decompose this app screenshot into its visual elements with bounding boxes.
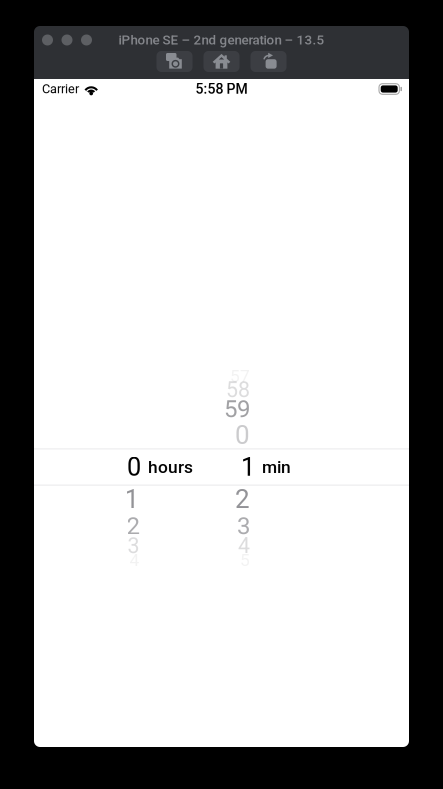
staticText: 57: [230, 366, 250, 386]
staticText: 0: [127, 452, 141, 482]
button[interactable]: Rotate: [250, 51, 286, 72]
staticText: 2: [235, 484, 250, 514]
staticText: 1: [241, 452, 255, 482]
staticText: hours: [148, 457, 193, 477]
staticText: 5: [240, 550, 250, 570]
staticText: 2: [126, 512, 139, 540]
button[interactable]: Home: [203, 51, 239, 72]
staticText: 4: [238, 533, 250, 558]
staticText: iPhone SE – 2nd generation – 13.5: [118, 32, 324, 48]
staticText: 58: [226, 377, 250, 402]
staticText: 59: [224, 395, 250, 423]
staticText: 3: [127, 533, 139, 558]
staticText: 3: [237, 512, 250, 540]
staticText: 5:58 PM: [195, 81, 247, 97]
staticText: Carrier: [42, 82, 79, 96]
button[interactable]: Screenshot: [156, 51, 192, 72]
staticText: min: [262, 457, 291, 477]
staticText: 0: [235, 420, 250, 450]
staticText: 1: [124, 484, 139, 514]
button[interactable]: 0: [34, 448, 409, 485]
staticText: 4: [129, 550, 139, 570]
